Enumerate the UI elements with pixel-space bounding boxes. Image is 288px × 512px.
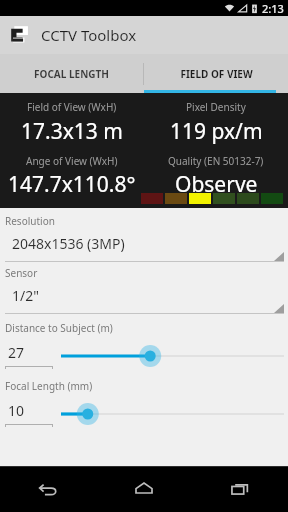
staticText: 17.3x13 m	[21, 117, 123, 146]
button[interactable]: FOCAL LENGTH	[0, 54, 143, 93]
staticText: CCTV Toolbox	[41, 25, 137, 45]
button[interactable]: Sensor	[0, 266, 288, 318]
button[interactable]: FIELD OF VIEW	[144, 54, 288, 93]
staticText: 2:13	[262, 1, 284, 16]
staticText: Sensor	[5, 266, 38, 280]
staticText: 2048x1536 (3MP)	[12, 234, 125, 253]
button[interactable]: Recent apps	[192, 466, 288, 512]
staticText: Ange of View (WxH)	[26, 154, 118, 168]
staticText: Resolution	[5, 214, 55, 228]
staticText: FOCAL LENGTH	[34, 67, 109, 81]
staticText: 1/2"	[12, 286, 39, 305]
staticText: Pixel Density	[186, 100, 246, 114]
staticText: Focal Length (mm)	[5, 379, 93, 393]
staticText: 119 px/m	[170, 117, 263, 146]
staticText: 27	[8, 343, 25, 362]
staticText: 10	[8, 401, 25, 420]
button[interactable]: Distance to Subject (m)	[61, 341, 284, 371]
staticText: Field of View (WxH)	[27, 100, 117, 114]
button[interactable]: Back	[0, 466, 96, 512]
button[interactable]: Resolution	[0, 214, 288, 266]
staticText: 147.7x110.8°	[8, 170, 136, 199]
button[interactable]: Focal Length (mm)	[61, 399, 284, 429]
staticText: Observe	[175, 170, 258, 199]
staticText: Distance to Subject (m)	[5, 321, 113, 335]
staticText: FIELD OF VIEW	[180, 67, 253, 81]
button[interactable]: Home	[96, 466, 192, 512]
staticText: Quality (EN 50132-7)	[168, 154, 264, 168]
